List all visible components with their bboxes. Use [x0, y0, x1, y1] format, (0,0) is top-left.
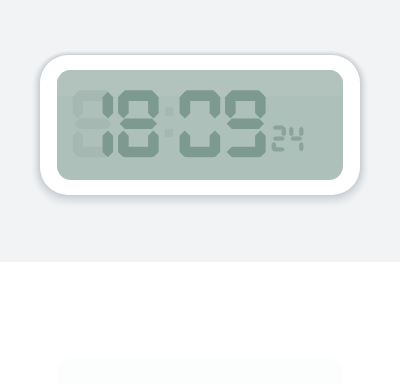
button[interactable]: Digital clock, 18:09, 24 hour — [40, 55, 360, 195]
